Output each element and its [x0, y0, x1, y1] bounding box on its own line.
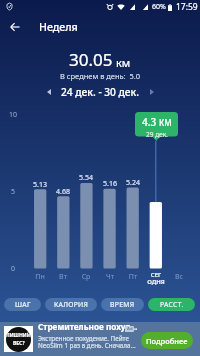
- staticText: Чт: [96, 272, 124, 282]
- staticText: ВЕС?: [13, 340, 25, 347]
- staticText: 4.68: [52, 187, 74, 197]
- staticText: 10: [5, 110, 21, 120]
- staticText: 60%: [152, 2, 166, 12]
- button[interactable]: РАССТ.: [148, 298, 195, 311]
- staticText: ШАГ: [15, 300, 31, 309]
- staticText: ВРЕМЯ: [110, 300, 135, 309]
- staticText: 17:59: [176, 1, 198, 13]
- staticText: Подробнее: [146, 336, 188, 346]
- staticText: км: [116, 55, 131, 70]
- staticText: 24 дек. - 30 дек.: [61, 85, 140, 99]
- staticText: 4.3: [142, 115, 157, 129]
- staticText: 5.16: [99, 179, 121, 189]
- staticText: 5.54: [75, 173, 97, 183]
- staticText: КМ: [159, 117, 172, 128]
- staticText: Стремительное похуд...: [38, 321, 138, 332]
- staticText: 5.24: [122, 178, 144, 188]
- staticText: 5: [5, 187, 21, 197]
- button[interactable]: Подробнее: [141, 332, 193, 349]
- staticText: 29 дек.: [146, 130, 168, 139]
- staticText: 5.13: [29, 180, 51, 190]
- staticText: Пн: [26, 272, 54, 282]
- staticText: Пт: [119, 272, 147, 282]
- button[interactable]: ШАГ: [4, 298, 41, 311]
- staticText: 30.05: [69, 48, 113, 71]
- button[interactable]: Back: [0, 14, 30, 39]
- staticText: СЕГ ОДНЯ: [142, 271, 170, 286]
- staticText: 0: [5, 264, 21, 274]
- staticText: Ср: [72, 272, 100, 282]
- button[interactable]: Previous week: [41, 84, 57, 100]
- staticText: Ad: [127, 326, 133, 332]
- button[interactable]: ВРЕМЯ: [101, 298, 144, 311]
- staticText: Вт: [49, 272, 77, 282]
- staticText: Неделя: [39, 20, 78, 34]
- staticText: Экстренное похудение. Пейте NeoSlim 1 ра…: [38, 334, 136, 349]
- staticText: КАЛОРИЯ: [54, 300, 89, 309]
- staticText: Вс: [165, 272, 193, 282]
- button[interactable]: Next week: [144, 84, 160, 100]
- staticText: В среднем в день: 5.0: [60, 71, 141, 81]
- staticText: РАССТ.: [160, 300, 184, 309]
- button[interactable]: КАЛОРИЯ: [45, 298, 97, 311]
- staticText: ЛИШНИЙ: [6, 332, 31, 339]
